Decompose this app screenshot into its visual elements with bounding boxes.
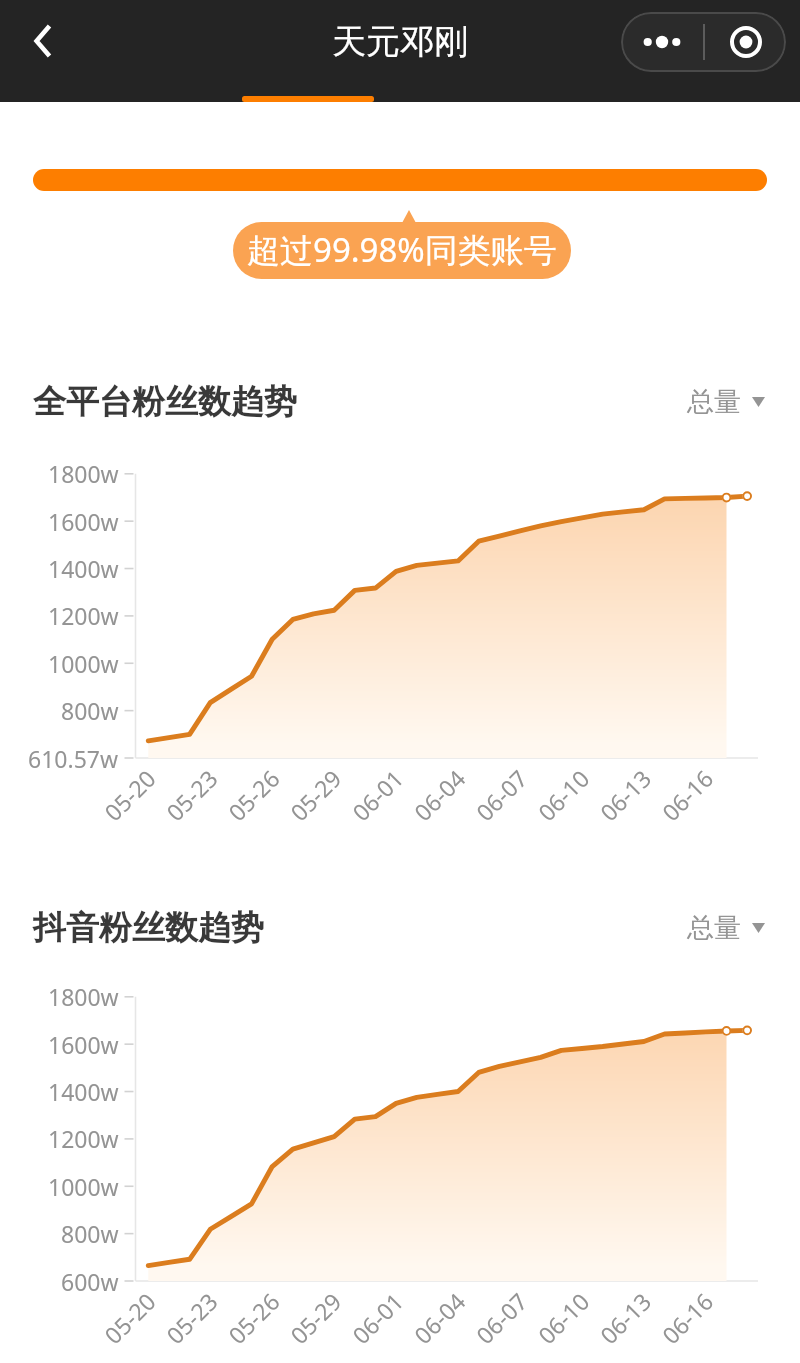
button[interactable]: Selected tab — [242, 96, 374, 102]
staticText: 超过99.98%同类账号 — [247, 227, 557, 272]
staticText: 全平台粉丝数趋势 — [33, 381, 297, 423]
staticText: 总量 — [687, 385, 741, 419]
button[interactable]: Close — [705, 12, 786, 72]
button[interactable]: Back — [14, 13, 70, 69]
staticText: 抖音粉丝数趋势 — [33, 907, 264, 949]
button[interactable]: 总量 — [687, 381, 765, 423]
button[interactable]: 总量 — [687, 907, 765, 949]
button[interactable]: More — [621, 12, 703, 72]
staticText: 天元邓刚 — [332, 20, 468, 63]
button[interactable]: 超过99.98%同类账号 — [233, 222, 571, 279]
staticText: 总量 — [687, 911, 741, 945]
